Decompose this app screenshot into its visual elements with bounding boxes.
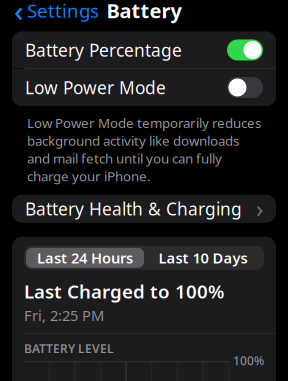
- staticText: Battery Health & Charging: [25, 197, 242, 220]
- staticText: ‹: [14, 0, 24, 30]
- staticText: Battery Percentage: [25, 38, 182, 61]
- staticText: ›: [256, 194, 263, 224]
- staticText: Low Power Mode temporarily reduces backg…: [27, 114, 261, 185]
- staticText: Fri, 2:25 PM: [24, 306, 104, 325]
- staticText: 100%: [233, 353, 264, 368]
- button[interactable]: Low Power Mode: [12, 69, 276, 106]
- button[interactable]: Last 24 Hours: [26, 248, 144, 268]
- staticText: Last 24 Hours: [37, 248, 133, 268]
- button[interactable]: Last 10 Days: [144, 248, 262, 268]
- staticText: Last 10 Days: [158, 248, 247, 268]
- staticText: BATTERY LEVEL: [24, 341, 114, 356]
- button[interactable]: Battery Health & Charging: [12, 195, 276, 223]
- button[interactable]: Battery Percentage: [12, 31, 276, 68]
- staticText: Battery: [106, 0, 181, 24]
- staticText: Settings: [27, 0, 99, 23]
- button[interactable]: ‹: [6, 0, 107, 34]
- staticText: Low Power Mode: [25, 76, 166, 99]
- staticText: Last Charged to 100%: [24, 279, 224, 304]
